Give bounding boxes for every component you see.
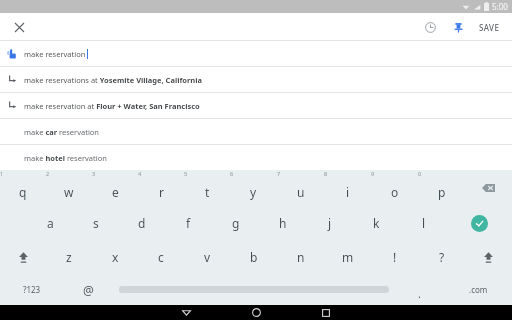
button[interactable]: m <box>324 240 371 274</box>
staticText: r <box>159 184 164 200</box>
button[interactable]: History <box>419 16 441 38</box>
button[interactable]: Recents <box>291 305 361 320</box>
staticText: ? <box>439 249 445 265</box>
button[interactable]: z <box>46 240 92 274</box>
staticText: v <box>204 249 211 265</box>
button[interactable]: g <box>212 206 259 240</box>
button[interactable]: x <box>92 240 138 274</box>
button[interactable]: Home <box>221 305 291 320</box>
staticText: make reservation at Flour + Water, San F… <box>24 101 200 111</box>
button[interactable]: ?123 <box>0 274 63 305</box>
staticText: l <box>422 215 426 231</box>
staticText: 2 <box>46 170 50 177</box>
button[interactable]: @ <box>63 274 113 305</box>
staticText: 5 <box>184 170 188 177</box>
staticText: z <box>66 249 72 265</box>
button[interactable]: f <box>165 206 212 240</box>
staticText: 3 <box>92 170 96 177</box>
staticText: c <box>158 249 164 265</box>
button[interactable]: s <box>73 206 119 240</box>
staticText: 0 <box>418 170 422 177</box>
button[interactable]: ! <box>371 240 418 274</box>
button[interactable]: n <box>277 240 324 274</box>
staticText: h <box>279 215 287 231</box>
staticText: j <box>328 215 332 231</box>
staticText: 8 <box>324 170 328 177</box>
staticText: x <box>112 249 119 265</box>
staticText: y <box>250 184 257 200</box>
staticText: 6 <box>230 170 234 177</box>
button[interactable]: 6 <box>230 170 277 206</box>
button[interactable]: 9 <box>371 170 418 206</box>
staticText: s <box>93 215 99 231</box>
button[interactable]: Shift <box>465 240 512 274</box>
button[interactable]: Enter <box>447 206 512 240</box>
staticText: 7 <box>277 170 281 177</box>
staticText: SAVE <box>479 22 500 33</box>
button[interactable]: k <box>353 206 400 240</box>
staticText: b <box>250 249 258 265</box>
button[interactable]: 7 <box>277 170 324 206</box>
button[interactable]: Space <box>113 274 394 305</box>
button[interactable]: make hotel reservation <box>0 145 512 170</box>
button[interactable]: 5 <box>184 170 230 206</box>
button[interactable]: Close <box>8 16 30 38</box>
staticText: 9 <box>371 170 375 177</box>
button[interactable]: make reservations at Yosemite Village, C… <box>0 67 512 92</box>
button[interactable]: . <box>394 274 444 305</box>
button[interactable]: 4 <box>138 170 184 206</box>
staticText: .com <box>469 284 488 295</box>
staticText: g <box>232 215 240 231</box>
staticText: make reservations at Yosemite Village, C… <box>24 75 202 85</box>
staticText: 1 <box>0 170 4 177</box>
staticText: 5:00 <box>492 1 508 12</box>
staticText: w <box>64 184 74 200</box>
staticText: p <box>438 184 446 200</box>
staticText: make reservation <box>24 49 86 59</box>
button[interactable]: c <box>138 240 184 274</box>
button[interactable]: make reservation <box>0 41 512 66</box>
button[interactable]: b <box>230 240 277 274</box>
button[interactable]: 2 <box>46 170 92 206</box>
button[interactable]: make reservation at Flour + Water, San F… <box>0 93 512 118</box>
button[interactable]: 0 <box>418 170 465 206</box>
button[interactable]: .com <box>444 274 512 305</box>
staticText: d <box>138 215 146 231</box>
staticText: q <box>19 184 27 200</box>
button[interactable]: Pin <box>447 16 469 38</box>
button[interactable]: 1 <box>0 170 46 206</box>
staticText: t <box>205 184 210 200</box>
button[interactable]: 3 <box>92 170 138 206</box>
button[interactable]: a <box>27 206 73 240</box>
staticText: u <box>297 184 305 200</box>
button[interactable]: v <box>184 240 230 274</box>
button[interactable]: make car reservation <box>0 119 512 144</box>
button[interactable]: h <box>259 206 306 240</box>
button[interactable]: Backspace <box>465 170 512 206</box>
staticText: ! <box>393 249 397 265</box>
staticText: . <box>418 286 421 301</box>
staticText: f <box>186 215 191 231</box>
staticText: i <box>346 184 350 200</box>
staticText: 4 <box>138 170 142 177</box>
staticText: make hotel reservation <box>24 153 107 163</box>
button[interactable]: l <box>400 206 447 240</box>
button[interactable]: Back <box>151 305 221 320</box>
staticText: k <box>373 215 380 231</box>
staticText: e <box>112 184 119 200</box>
button[interactable]: d <box>119 206 165 240</box>
button[interactable]: ? <box>418 240 465 274</box>
button[interactable]: 8 <box>324 170 371 206</box>
button[interactable]: Shift <box>0 240 46 274</box>
staticText: m <box>342 249 354 265</box>
button[interactable]: j <box>306 206 353 240</box>
staticText: a <box>47 215 54 231</box>
staticText: n <box>297 249 305 265</box>
staticText: @ <box>83 282 94 298</box>
staticText: o <box>391 184 399 200</box>
staticText: ?123 <box>23 284 41 295</box>
button[interactable]: SAVE <box>475 18 504 37</box>
staticText: make car reservation <box>24 127 99 137</box>
